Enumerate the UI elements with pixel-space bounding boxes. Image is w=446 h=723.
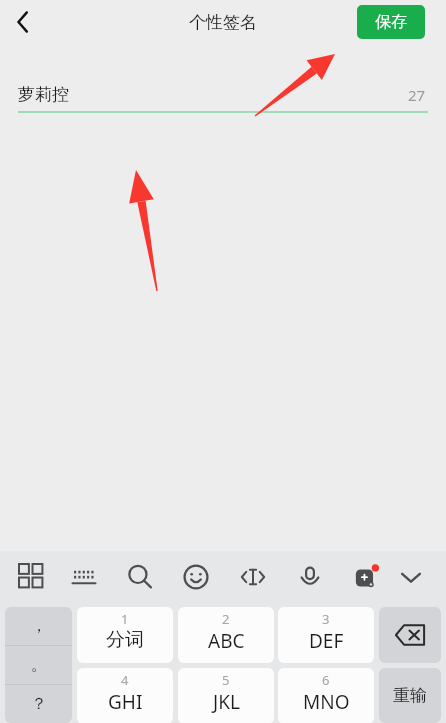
staticText: 6	[322, 671, 330, 689]
staticText: 27	[408, 85, 426, 105]
button[interactable]: Move cursor	[232, 555, 274, 599]
button[interactable]: 。	[5, 646, 72, 684]
button[interactable]: Search	[119, 555, 161, 599]
button[interactable]: Add sticker	[345, 555, 387, 599]
button[interactable]: 3	[278, 607, 374, 663]
button[interactable]: 4	[77, 668, 173, 723]
staticText: ，	[31, 616, 47, 636]
staticText: 1	[121, 610, 129, 628]
button[interactable]: ，	[5, 607, 72, 645]
button[interactable]: Keyboard layout	[63, 555, 105, 599]
button[interactable]: 重输	[379, 668, 441, 723]
button[interactable]: 6	[278, 668, 374, 723]
button[interactable]: Backspace	[379, 607, 441, 663]
staticText: 4	[121, 671, 129, 689]
staticText: 3	[322, 610, 330, 628]
button[interactable]: ？	[5, 685, 72, 723]
staticText: ABC	[208, 628, 245, 654]
staticText: 重输	[393, 685, 427, 706]
staticText: 2	[222, 610, 230, 628]
staticText: 保存	[375, 12, 407, 32]
staticText: DEF	[309, 628, 344, 654]
staticText: ？	[31, 694, 47, 714]
button[interactable]: Symbols	[11, 555, 53, 599]
staticText: 分词	[106, 628, 144, 652]
button[interactable]: Emoji	[175, 555, 217, 599]
button[interactable]: Back	[0, 0, 46, 44]
staticText: JKL	[213, 689, 240, 715]
button[interactable]: Hide keyboard	[390, 555, 432, 599]
staticText: 萝莉控	[18, 84, 69, 105]
staticText: MNO	[303, 689, 350, 715]
button[interactable]: 1	[77, 607, 173, 663]
button[interactable]: 5	[178, 668, 274, 723]
staticText: GHI	[108, 689, 143, 715]
staticText: 个性签名	[0, 12, 446, 33]
staticText: 。	[31, 655, 47, 675]
button[interactable]: Voice input	[289, 555, 331, 599]
button[interactable]: 2	[178, 607, 274, 663]
button[interactable]: 保存	[357, 5, 425, 39]
staticText: 5	[222, 671, 230, 689]
button[interactable]: 萝莉控	[0, 78, 446, 111]
